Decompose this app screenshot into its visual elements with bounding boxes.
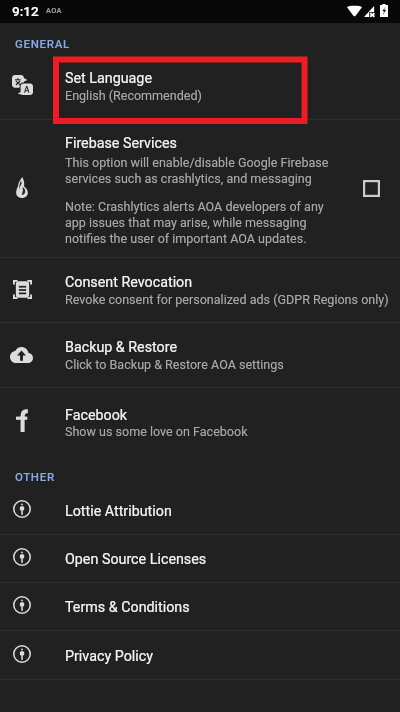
other: Terms and conditions info: [13, 596, 31, 614]
button[interactable]: [0, 486, 400, 534]
staticText: Set Language: [65, 70, 152, 87]
other: Firebase: [15, 177, 29, 198]
button[interactable]: [0, 631, 400, 679]
button[interactable]: [0, 58, 400, 119]
staticText: Show us some love on Facebook: [65, 424, 248, 439]
staticText: Note: Crashlytics alerts AOA developers …: [65, 199, 324, 246]
staticText: English (Recommended): [65, 88, 202, 103]
staticText: Privacy Policy: [65, 648, 154, 665]
other: Consent revocation: [13, 280, 32, 299]
other: Open source licenses info: [13, 548, 31, 566]
other: Facebook: [16, 409, 28, 432]
other: Wi-Fi: [347, 5, 362, 16]
button[interactable]: [0, 258, 400, 322]
staticText: OTHER: [15, 470, 55, 483]
staticText: 9:12: [12, 3, 39, 19]
staticText: Backup & Restore: [65, 339, 178, 356]
other: Backup and restore: [10, 347, 33, 363]
other: Language: [12, 75, 33, 95]
staticText: Firebase Services: [65, 135, 177, 152]
staticText: Facebook: [65, 407, 128, 424]
staticText: Click to Backup & Restore AOA settings: [65, 357, 284, 372]
other: Enable Firebase services: [363, 180, 380, 197]
staticText: Revoke consent for personalized ads (GDP…: [65, 292, 389, 307]
staticText: This option will enable/disable Google F…: [65, 155, 329, 186]
other: Battery: [380, 4, 388, 17]
staticText: Terms & Conditions: [65, 599, 190, 616]
staticText: GENERAL: [15, 37, 70, 50]
staticText: Consent Revocation: [65, 274, 193, 291]
button[interactable]: [0, 535, 400, 582]
button[interactable]: [0, 388, 400, 452]
button[interactable]: [0, 120, 400, 257]
staticText: Lottie Attribution: [65, 503, 172, 520]
staticText: AOA: [46, 6, 62, 15]
button[interactable]: [0, 583, 400, 630]
other: Lottie attribution info: [13, 500, 31, 518]
other: Mobile signal: [364, 6, 375, 17]
other: Privacy policy info: [13, 645, 31, 663]
staticText: Open Source Licenses: [65, 551, 207, 568]
button[interactable]: [0, 323, 400, 387]
